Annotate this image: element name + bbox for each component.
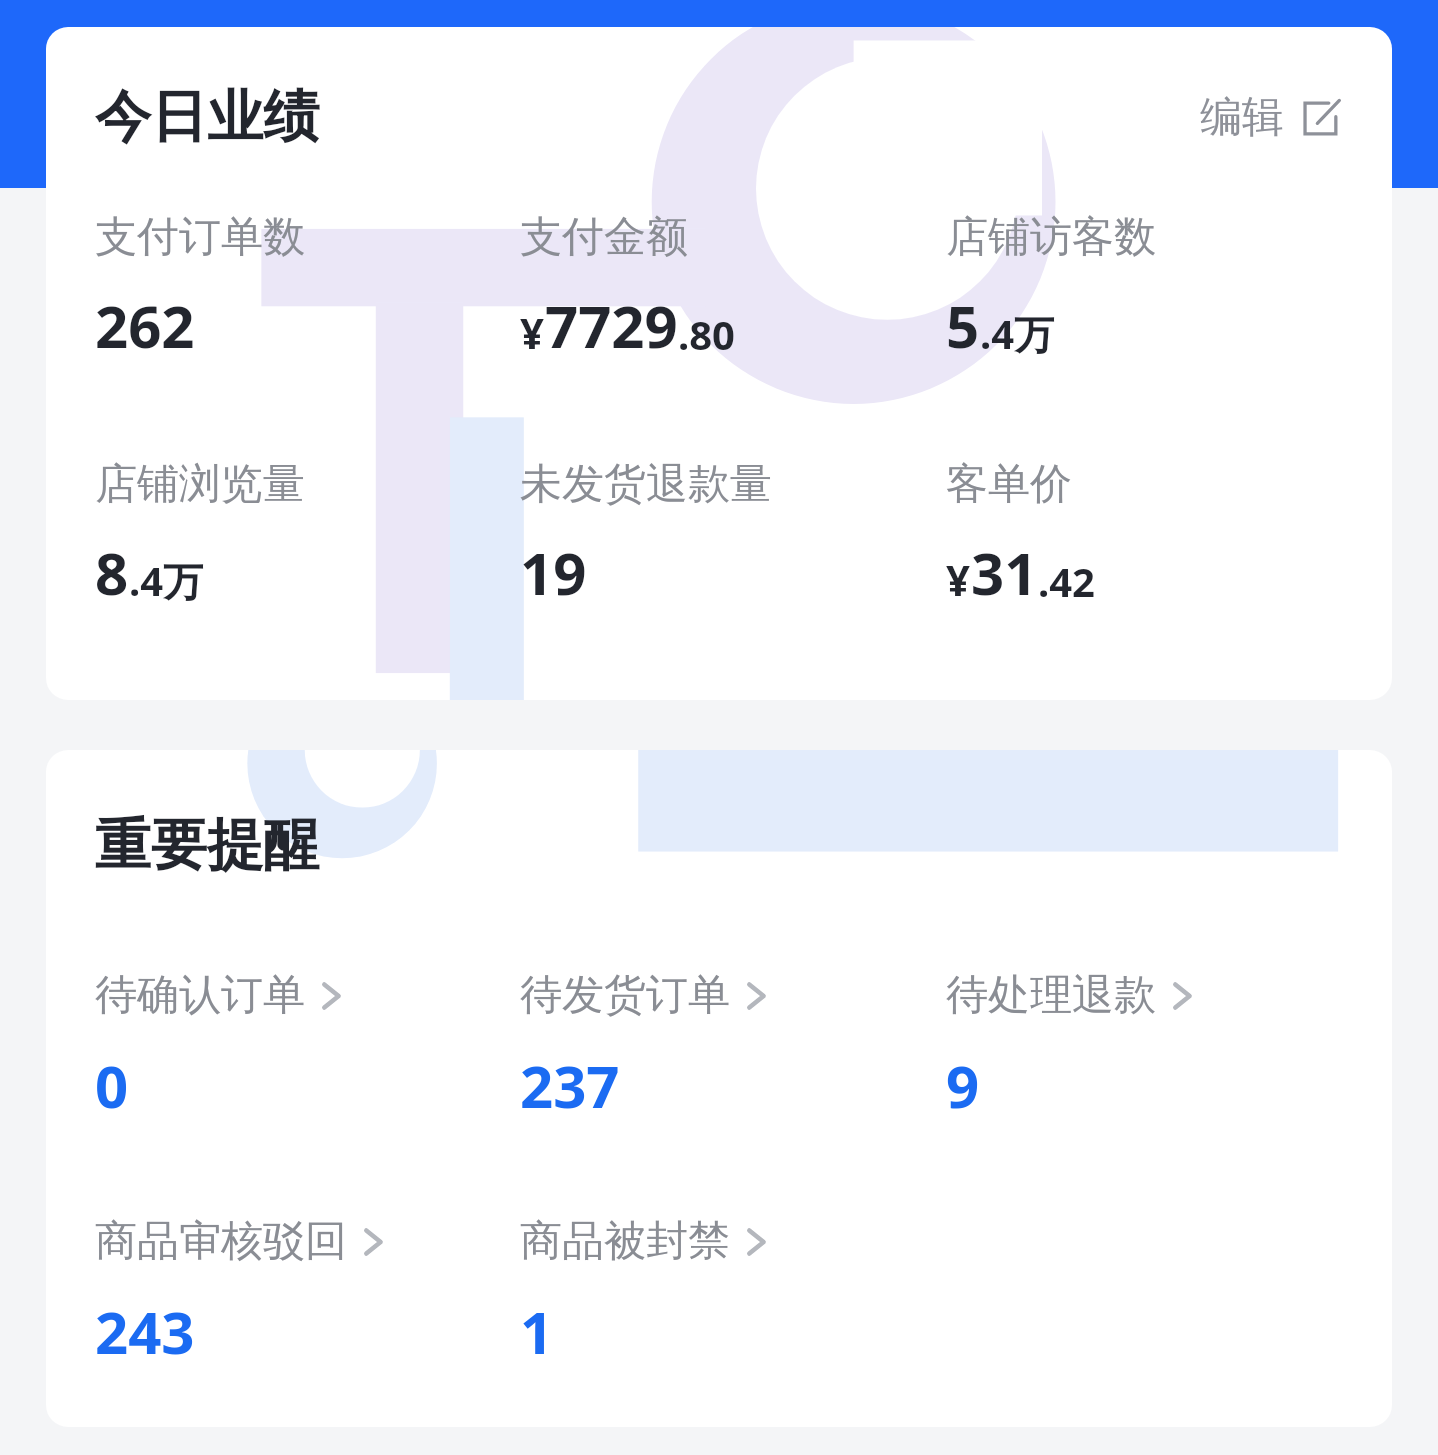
button[interactable]: 未发货退款量 [520,458,946,612]
staticText: 9 [946,1046,980,1125]
staticText: ¥ [946,551,971,608]
staticText: 0 [95,1046,129,1125]
staticText: 编辑 [1200,91,1284,144]
staticText: 待确认订单 [95,969,305,1022]
staticText: 未发货退款量 [520,458,772,511]
button[interactable]: 支付金额 [520,211,946,365]
button[interactable]: 待确认订单 [95,969,520,1125]
staticText: 店铺访客数 [946,211,1156,264]
staticText: 237 [520,1046,620,1125]
staticText: 商品被封禁 [520,1215,730,1268]
staticText: .80 [678,307,735,361]
button[interactable]: 待发货订单 [520,969,946,1125]
staticText: .42 [1038,554,1095,608]
button[interactable]: 支付订单数 [95,211,520,365]
staticText: 19 [520,533,587,612]
button[interactable]: 商品审核驳回 [95,1215,520,1371]
button[interactable]: 店铺访客数 [946,211,1372,365]
button[interactable]: 编辑 [1196,85,1346,150]
staticText: ¥ [520,304,545,361]
staticText: .4万 [129,553,204,608]
staticText: 1 [520,1292,554,1371]
staticText: 7729 [545,286,678,365]
staticText: 8 [95,533,129,612]
button[interactable]: 店铺浏览量 [95,458,520,612]
staticText: 今日业绩 [95,82,319,153]
staticText: 客单价 [946,458,1072,511]
staticText: 243 [95,1292,195,1371]
staticText: 重要提醒 [95,810,319,881]
staticText: 5 [946,286,980,365]
other: 编辑 [1298,96,1342,140]
staticText: 262 [95,286,195,365]
staticText: 待处理退款 [946,969,1156,1022]
staticText: .4万 [980,306,1055,361]
staticText: 支付订单数 [95,211,305,264]
button[interactable]: 商品被封禁 [520,1215,946,1371]
staticText: 支付金额 [520,211,688,264]
button[interactable]: 客单价 [946,458,1372,612]
staticText: 商品审核驳回 [95,1215,347,1268]
staticText: 待发货订单 [520,969,730,1022]
staticText: 31 [971,533,1038,612]
staticText: 店铺浏览量 [95,458,305,511]
button[interactable]: 待处理退款 [946,969,1372,1125]
